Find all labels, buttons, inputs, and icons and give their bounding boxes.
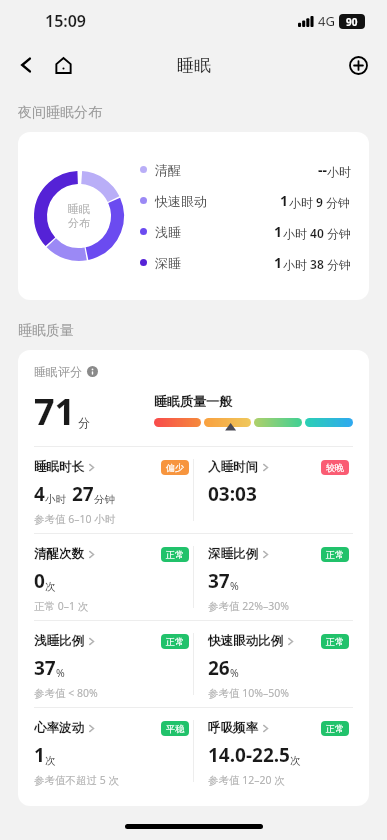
staticText: 37	[208, 568, 230, 594]
staticText: 快速眼动比例	[208, 633, 283, 649]
staticText: 次	[290, 754, 301, 767]
staticText: 参考值 12–20 次	[208, 773, 285, 787]
staticText: 1	[274, 253, 283, 272]
staticText: 参考值 10%–50%	[208, 686, 289, 700]
staticText: 正常	[166, 636, 184, 647]
button[interactable]: 入睡时间	[208, 447, 353, 533]
button[interactable]: 浅睡比例	[34, 621, 193, 707]
staticText: 27	[72, 481, 94, 507]
staticText: 次	[45, 580, 56, 593]
button[interactable]: 快速眼动比例	[208, 621, 353, 707]
staticText: 睡眠	[68, 202, 90, 216]
staticText: %	[230, 579, 239, 593]
staticText: 小时 40 分钟	[283, 225, 351, 241]
staticText: 睡眠	[177, 55, 211, 76]
staticText: 正常	[326, 723, 344, 734]
staticText: %	[56, 666, 65, 680]
button[interactable]: Home	[46, 48, 80, 82]
staticText: 90	[346, 15, 358, 29]
staticText: 清醒次数	[34, 546, 84, 562]
staticText: 浅睡比例	[34, 633, 84, 649]
staticText: 分布	[68, 216, 90, 230]
staticText: 4G	[318, 12, 335, 30]
staticText: 睡眠评分	[34, 364, 82, 379]
button[interactable]: 呼吸频率	[208, 708, 353, 794]
staticText: 偏少	[166, 462, 184, 473]
staticText: 分钟	[94, 493, 115, 506]
staticText: 清醒	[155, 162, 181, 178]
button[interactable]: 心率波动	[34, 708, 193, 794]
staticText: 参考值 6–10 小时	[34, 512, 116, 526]
staticText: 正常	[326, 636, 344, 647]
staticText: 深睡	[155, 255, 181, 271]
staticText: 小时 9 分钟	[289, 194, 351, 210]
staticText: 浅睡	[155, 224, 181, 240]
staticText: 次	[45, 754, 56, 767]
button[interactable]: Info	[87, 366, 98, 377]
staticText: 参考值 < 80%	[34, 686, 98, 700]
staticText: 15:09	[45, 10, 87, 32]
staticText: 夜间睡眠分布	[18, 104, 102, 122]
staticText: 正常 0–1 次	[34, 599, 89, 613]
staticText: 小时	[45, 493, 66, 506]
staticText: 1	[274, 222, 283, 241]
button[interactable]: Add	[341, 48, 375, 82]
staticText: 心率波动	[34, 720, 84, 736]
staticText: 14.0-22.5	[208, 742, 290, 768]
staticText: 呼吸频率	[208, 720, 258, 736]
staticText: 快速眼动	[155, 193, 207, 209]
button[interactable]: Back	[10, 48, 44, 82]
button[interactable]: 睡眠时长	[34, 447, 193, 533]
staticText: 03:03	[208, 481, 257, 507]
staticText: 4	[34, 481, 45, 507]
staticText: 深睡比例	[208, 546, 258, 562]
button[interactable]: 深睡比例	[208, 534, 353, 620]
staticText: 参考值不超过 5 次	[34, 773, 119, 787]
staticText: 平稳	[166, 723, 184, 734]
staticText: 26	[208, 655, 230, 681]
staticText: 1	[34, 742, 45, 768]
staticText: 0	[34, 568, 45, 594]
staticText: 睡眠质量一般	[154, 393, 232, 409]
button[interactable]: 清醒次数	[34, 534, 193, 620]
staticText: 正常	[166, 549, 184, 560]
staticText: 1	[280, 191, 289, 210]
staticText: 分	[78, 415, 90, 430]
staticText: 71	[34, 387, 76, 436]
staticText: 小时	[327, 164, 351, 179]
staticText: --	[318, 160, 327, 179]
staticText: 睡眠质量	[18, 322, 74, 340]
staticText: 小时 38 分钟	[283, 256, 351, 272]
staticText: 参考值 22%–30%	[208, 599, 289, 613]
staticText: %	[230, 666, 239, 680]
staticText: 较晚	[326, 462, 344, 473]
staticText: 入睡时间	[208, 459, 258, 475]
staticText: 睡眠时长	[34, 459, 84, 475]
staticText: 37	[34, 655, 56, 681]
staticText: 正常	[326, 549, 344, 560]
